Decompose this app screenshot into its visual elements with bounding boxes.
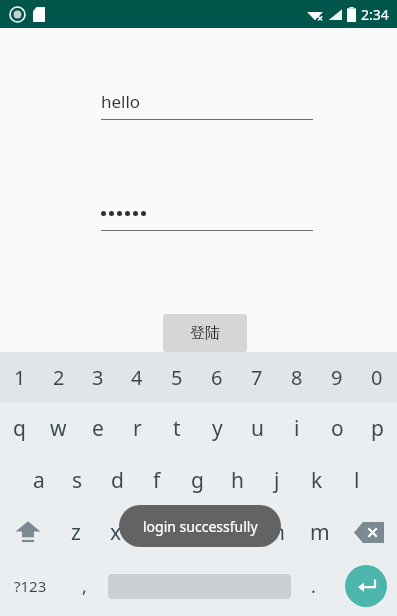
staticText: j: [274, 466, 280, 495]
button[interactable]: e: [78, 402, 117, 454]
staticText: e: [92, 414, 104, 443]
button[interactable]: ?123: [0, 558, 60, 614]
staticText: r: [133, 414, 142, 443]
staticText: 8: [291, 364, 303, 391]
staticText: 6: [211, 364, 223, 391]
button[interactable]: .: [291, 558, 335, 614]
button[interactable]: 3: [78, 352, 117, 402]
button[interactable]: l: [337, 454, 377, 506]
button[interactable]: h: [217, 454, 257, 506]
button[interactable]: 4: [117, 352, 157, 402]
button[interactable]: 6: [197, 352, 237, 402]
staticText: 9: [331, 364, 343, 391]
button[interactable]: a: [19, 454, 58, 506]
staticText: f: [153, 466, 161, 495]
button[interactable]: q: [0, 402, 39, 454]
staticText: t: [173, 414, 181, 443]
staticText: h: [231, 466, 244, 495]
staticText: i: [294, 414, 300, 443]
button[interactable]: [101, 202, 313, 231]
button[interactable]: j: [257, 454, 297, 506]
button[interactable]: Backspace: [340, 506, 397, 558]
button[interactable]: f: [137, 454, 177, 506]
staticText: 3: [92, 364, 104, 391]
staticText: w: [50, 414, 67, 443]
staticText: m: [310, 518, 330, 547]
staticText: b: [231, 518, 244, 547]
staticText: 1: [14, 364, 26, 391]
staticText: a: [33, 466, 45, 495]
staticText: 2: [53, 364, 65, 391]
staticText: 4: [131, 364, 143, 391]
button[interactable]: d: [97, 454, 137, 506]
button[interactable]: y: [197, 402, 237, 454]
staticText: k: [311, 466, 323, 495]
button[interactable]: 9: [317, 352, 357, 402]
button[interactable]: s: [58, 454, 97, 506]
staticText: hello: [101, 90, 141, 113]
button[interactable]: 5: [157, 352, 197, 402]
button[interactable]: 1: [0, 352, 39, 402]
staticText: o: [331, 414, 344, 443]
staticText: ?123: [14, 576, 47, 596]
staticText: 7: [251, 364, 263, 391]
staticText: n: [272, 518, 285, 547]
button[interactable]: k: [297, 454, 337, 506]
button[interactable]: n: [258, 506, 299, 558]
staticText: d: [111, 466, 124, 495]
button[interactable]: c: [136, 506, 176, 558]
staticText: z: [71, 518, 81, 547]
button[interactable]: ,: [60, 558, 108, 614]
button[interactable]: v: [176, 506, 217, 558]
staticText: c: [151, 518, 162, 547]
button[interactable]: x: [96, 506, 136, 558]
staticText: v: [191, 518, 202, 547]
button[interactable]: t: [157, 402, 197, 454]
staticText: x: [110, 518, 122, 547]
staticText: u: [251, 414, 264, 443]
button[interactable]: z: [56, 506, 96, 558]
button[interactable]: p: [357, 402, 397, 454]
button[interactable]: i: [277, 402, 317, 454]
staticText: 2:34: [361, 5, 389, 24]
button[interactable]: o: [317, 402, 357, 454]
button[interactable]: 登陆: [163, 314, 247, 352]
staticText: .: [311, 574, 316, 599]
staticText: q: [13, 414, 26, 443]
button[interactable]: u: [237, 402, 277, 454]
button[interactable]: hello: [101, 90, 313, 120]
staticText: ,: [82, 574, 87, 599]
button[interactable]: b: [217, 506, 258, 558]
staticText: 5: [171, 364, 183, 391]
button[interactable]: Space: [108, 558, 291, 614]
staticText: g: [191, 466, 204, 495]
staticText: l: [354, 466, 360, 495]
button[interactable]: 8: [277, 352, 317, 402]
staticText: 0: [371, 364, 383, 391]
button[interactable]: Enter: [335, 558, 397, 614]
button[interactable]: Shift: [0, 506, 56, 558]
button[interactable]: g: [177, 454, 217, 506]
staticText: login successfully: [143, 517, 258, 536]
button[interactable]: r: [117, 402, 157, 454]
staticText: s: [72, 466, 83, 495]
button[interactable]: 2: [39, 352, 78, 402]
button[interactable]: m: [299, 506, 340, 558]
staticText: y: [212, 414, 223, 443]
button[interactable]: 7: [237, 352, 277, 402]
staticText: p: [371, 414, 384, 443]
button[interactable]: w: [39, 402, 78, 454]
staticText: 登陆: [190, 324, 220, 343]
button[interactable]: 0: [357, 352, 397, 402]
